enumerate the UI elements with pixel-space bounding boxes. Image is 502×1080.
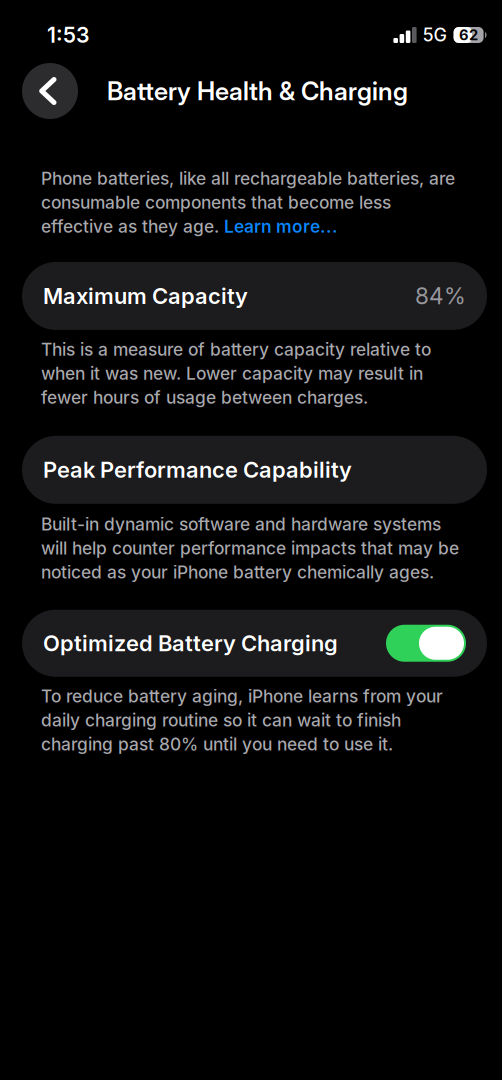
button[interactable]: Optimized Battery Charging	[0, 610, 502, 677]
staticText: Phone batteries, like all rechargeable b…	[41, 168, 455, 237]
button[interactable]: Maximum Capacity	[0, 262, 502, 330]
staticText: Built-in dynamic software and hardware s…	[41, 514, 459, 583]
staticText: 62	[459, 26, 478, 44]
button[interactable]: Peak Performance Capability	[0, 436, 502, 504]
staticText: 5G	[423, 24, 447, 46]
staticText: Maximum Capacity	[43, 283, 248, 309]
button[interactable]: Back	[22, 63, 78, 119]
staticText: 1:53	[47, 22, 90, 48]
staticText: This is a measure of battery capacity re…	[41, 339, 431, 408]
staticText: Peak Performance Capability	[43, 456, 352, 483]
staticText: Optimized Battery Charging	[43, 630, 338, 656]
staticText: 84%	[415, 282, 466, 310]
staticText: To reduce battery aging, iPhone learns f…	[41, 686, 443, 755]
staticText: Battery Health & Charging	[107, 76, 408, 106]
